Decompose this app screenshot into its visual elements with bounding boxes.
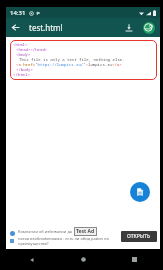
staticText: </html> xyxy=(13,72,30,77)
button[interactable]: Recent apps xyxy=(109,249,160,270)
staticText: ОТКРЫТЬ xyxy=(127,233,151,240)
staticText: нагоя изобложениями - есть ли обид район… xyxy=(18,236,109,241)
staticText: <head></head> xyxy=(16,47,48,52)
staticText: преимущества? xyxy=(18,241,49,246)
button[interactable]: Компании об избежании да xyxy=(6,224,160,249)
staticText: 14:31 xyxy=(10,9,26,17)
button[interactable]: Open in browser xyxy=(139,18,158,37)
staticText: test.html xyxy=(29,22,63,33)
staticText: Test Ad xyxy=(76,228,95,235)
button[interactable]: Home xyxy=(58,249,109,270)
button[interactable]: Download xyxy=(120,19,138,37)
staticText: This file is only a test file, nothing e… xyxy=(19,57,125,62)
button[interactable]: Back xyxy=(6,249,58,270)
button[interactable]: Edit file xyxy=(130,182,150,202)
staticText: Компании об избежании да xyxy=(18,229,73,234)
staticText: </body> xyxy=(16,67,33,72)
staticText: <html> xyxy=(13,42,28,47)
button[interactable]: Back xyxy=(6,18,25,37)
staticText: <a href="https://lumpics.ru/">lumpics.ru… xyxy=(16,62,122,67)
staticText: <body> xyxy=(16,52,31,57)
button[interactable]: ОТКРЫТЬ xyxy=(121,231,157,242)
